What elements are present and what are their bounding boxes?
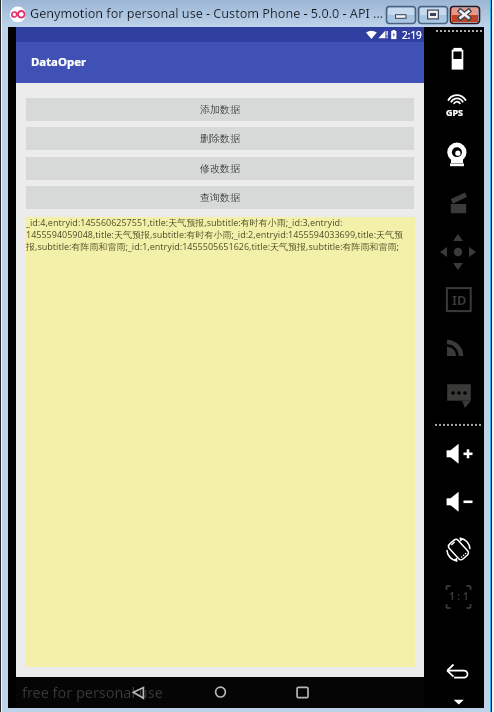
staticText: 1 : 1 xyxy=(449,589,469,603)
button[interactable]: Window control xyxy=(386,6,416,24)
staticText: 2:19 xyxy=(402,28,422,42)
button[interactable]: 修改数据 xyxy=(26,157,414,180)
staticText: ID xyxy=(452,291,467,309)
button[interactable]: 删除数据 xyxy=(26,127,414,150)
staticText: 修改数据 xyxy=(200,162,240,175)
button[interactable]: Window control xyxy=(450,6,480,24)
staticText: free for personal use xyxy=(22,683,163,703)
staticText: 删除数据 xyxy=(200,132,240,145)
staticText: 查询数据 xyxy=(200,191,240,204)
staticText: GPS xyxy=(446,106,464,118)
staticText: DataOper xyxy=(31,54,87,70)
staticText: Genymotion for personal use - Custom Pho… xyxy=(30,5,384,22)
staticText: 添加数据 xyxy=(200,103,240,116)
button[interactable]: Window control xyxy=(418,6,448,24)
staticText: _id:4,entryid:1455606257551,title:天气预报,s… xyxy=(26,216,404,253)
button[interactable]: 查询数据 xyxy=(26,186,414,209)
button[interactable]: 添加数据 xyxy=(26,98,414,121)
other: Navigation bar xyxy=(16,677,424,708)
